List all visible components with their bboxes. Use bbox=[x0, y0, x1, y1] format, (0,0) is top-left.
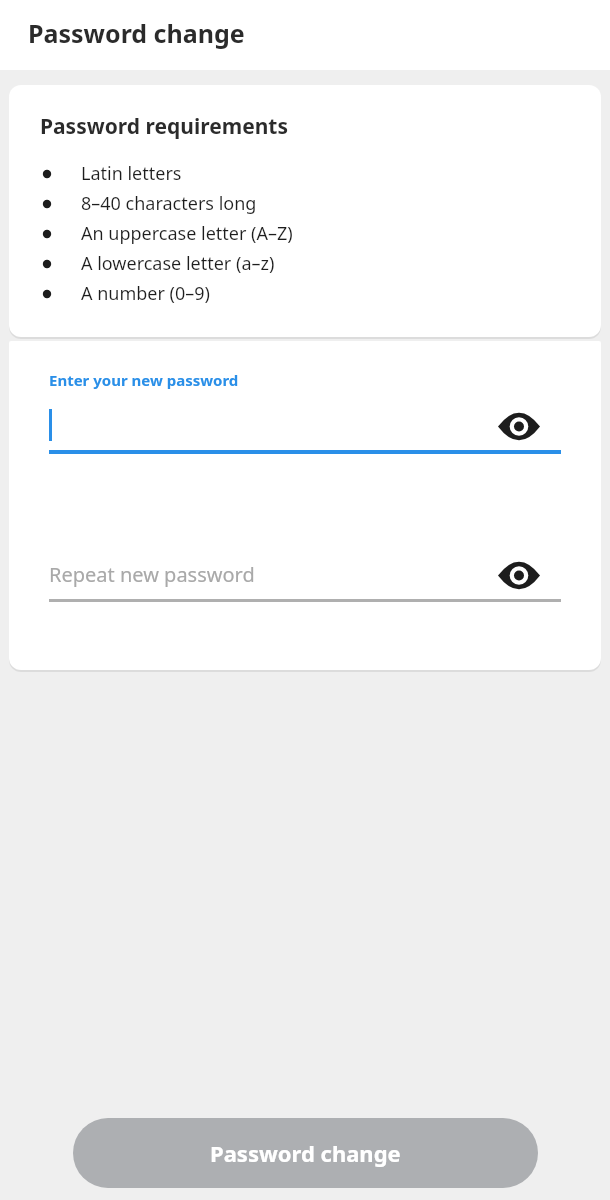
staticText: Latin letters bbox=[81, 161, 182, 186]
button[interactable]: Password change bbox=[73, 1118, 538, 1188]
staticText: A number (0–9) bbox=[81, 281, 210, 306]
staticText: Password requirements bbox=[40, 112, 289, 141]
button[interactable]: Enter your new password bbox=[49, 370, 561, 454]
staticText: Repeat new password bbox=[49, 561, 255, 588]
staticText: Password change bbox=[28, 16, 245, 50]
button[interactable]: Show password bbox=[495, 406, 543, 446]
button[interactable]: Show password bbox=[495, 555, 543, 595]
staticText: Enter your new password bbox=[49, 370, 239, 390]
staticText: A lowercase letter (a–z) bbox=[81, 251, 275, 276]
button[interactable]: Repeat new password bbox=[49, 551, 561, 602]
staticText: An uppercase letter (A–Z) bbox=[81, 221, 293, 246]
staticText: Password change bbox=[210, 1138, 401, 1168]
staticText: 8–40 characters long bbox=[81, 191, 257, 216]
